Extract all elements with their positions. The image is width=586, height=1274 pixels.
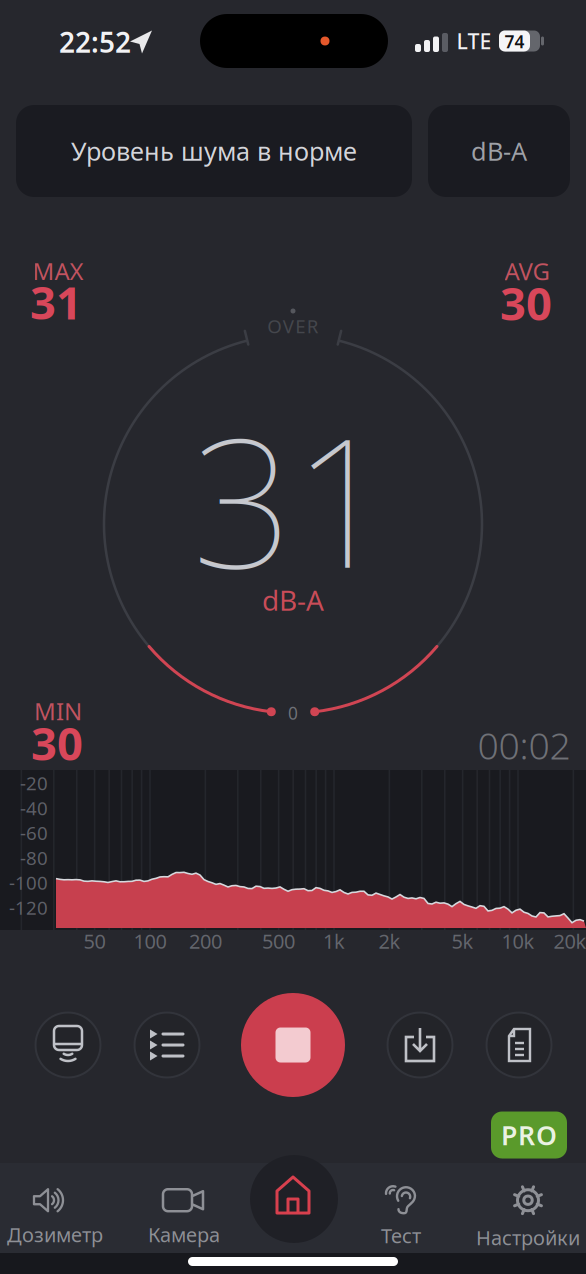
button[interactable]: Save (386, 1011, 453, 1078)
staticText: Тест (381, 1222, 421, 1249)
staticText: 0 (288, 701, 298, 724)
staticText: 50 (84, 928, 106, 954)
staticText: 20k (553, 928, 586, 954)
staticText: Дозиметр (7, 1221, 103, 1248)
staticText: -40 (20, 795, 48, 820)
staticText: Уровень шума в норме (71, 134, 357, 168)
button[interactable]: PRO (491, 1111, 567, 1158)
staticText: -120 (9, 895, 48, 920)
staticText: dB-A (471, 134, 527, 168)
staticText: 31 (192, 381, 394, 617)
staticText: 1k (323, 928, 345, 954)
staticText: LTE (456, 27, 491, 55)
button[interactable]: Дозиметр (0, 1186, 120, 1248)
staticText: dB-A (262, 581, 324, 619)
staticText: 2k (378, 928, 400, 954)
button[interactable]: Stop (241, 993, 345, 1097)
button[interactable]: Screen display (34, 1011, 101, 1078)
staticText: 5k (452, 928, 474, 954)
staticText: Настройки (476, 1224, 580, 1251)
staticText: 31 (30, 272, 82, 332)
staticText: MAX (32, 255, 83, 287)
staticText: 100 (133, 928, 166, 954)
staticText: MIN (34, 695, 82, 727)
button[interactable]: dB-A (428, 105, 570, 197)
staticText: 500 (262, 928, 295, 954)
button[interactable]: Камера (119, 1186, 249, 1248)
button[interactable]: Шумомер (274, 1176, 312, 1216)
staticText: 22:52 (59, 23, 131, 61)
staticText: 200 (189, 928, 222, 954)
staticText: -80 (20, 845, 48, 870)
staticText: 30 (31, 713, 83, 773)
staticText: Камера (148, 1221, 220, 1248)
staticText: PRO (501, 1117, 557, 1153)
button[interactable]: Тест (336, 1185, 466, 1249)
staticText: -20 (20, 771, 48, 795)
staticText: 30 (500, 273, 552, 333)
staticText: -100 (9, 870, 48, 895)
button[interactable]: Настройки (463, 1183, 586, 1251)
staticText: AVG (504, 255, 549, 287)
staticText: 10k (501, 928, 534, 954)
staticText: 74 (504, 30, 524, 53)
staticText: 00:02 (477, 720, 570, 770)
staticText: -60 (20, 820, 48, 845)
button[interactable]: Records list (133, 1011, 200, 1078)
button[interactable]: Report (485, 1011, 552, 1078)
staticText: OVER (267, 314, 319, 338)
